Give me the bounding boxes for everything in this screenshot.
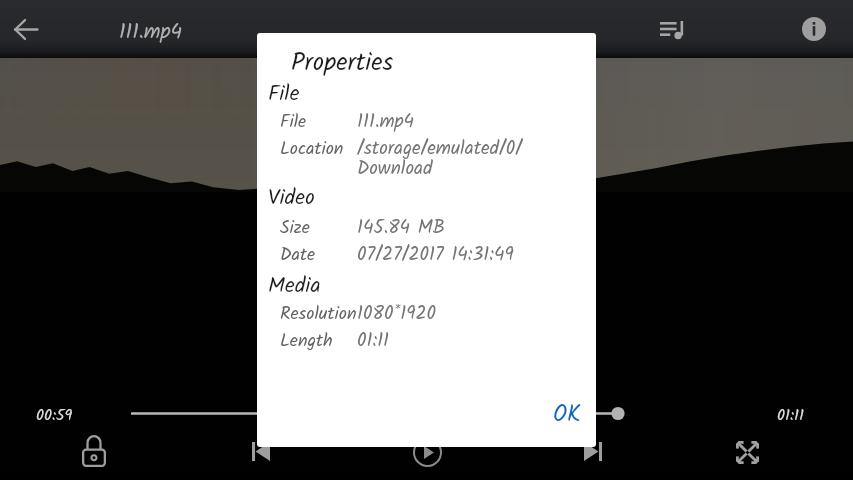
staticText: 111.mp4 [119,16,183,49]
button[interactable]: OK [543,385,591,446]
staticText: 01:11 [357,326,390,356]
button[interactable]: Info [791,6,837,52]
staticText: /storage/emulated/0/ Download [357,134,522,184]
staticText: 00:59 [36,403,73,429]
staticText: Date [280,241,316,270]
button[interactable]: Fullscreen [724,429,770,475]
button[interactable]: Back [3,6,49,52]
staticText: 01:11 [777,403,805,429]
staticText: Length [280,327,333,356]
staticText: Size [280,214,310,243]
staticText: Location [280,135,344,164]
staticText: OK [553,397,581,434]
staticText: 111.mp4 [357,107,415,137]
button[interactable]: Lock [71,428,117,474]
staticText: 07/27/2017 14:31:49 [357,240,514,270]
staticText: Properties [291,43,394,83]
staticText: 145.84 MB [357,213,445,243]
button[interactable]: Previous [238,428,284,474]
button[interactable]: Play [404,429,450,475]
button[interactable]: Next [570,428,616,474]
staticText: File [280,108,307,137]
staticText: 1080*1920 [357,299,436,329]
staticText: Media [268,269,321,303]
button[interactable]: Playlist [649,7,695,53]
staticText: Resolution [280,300,357,329]
staticText: Video [268,181,315,215]
staticText: File [268,77,300,111]
